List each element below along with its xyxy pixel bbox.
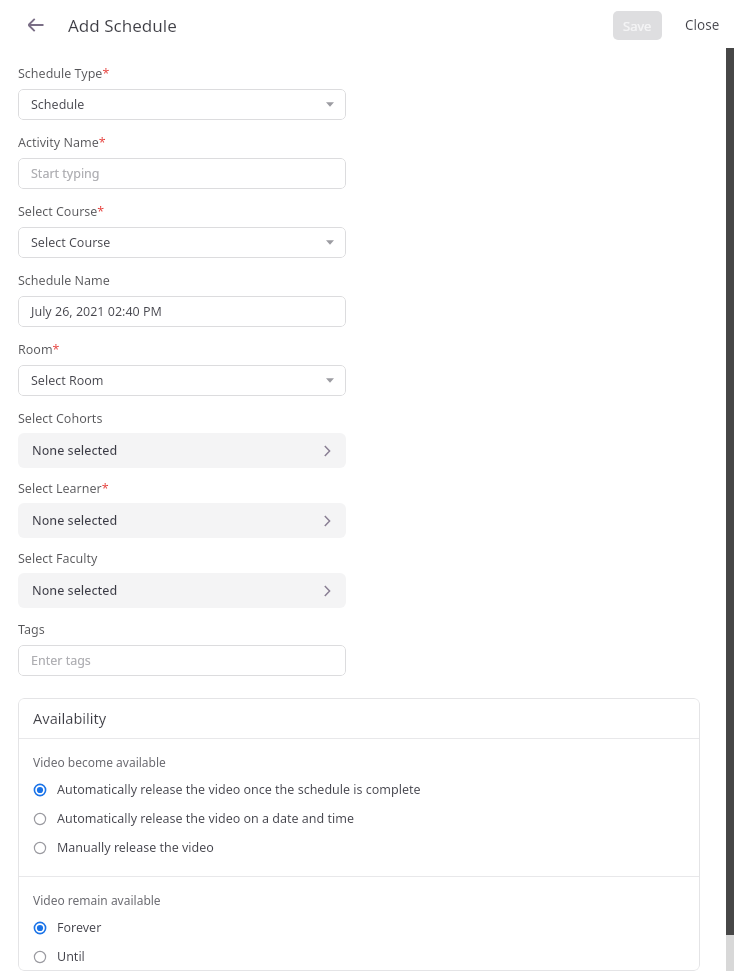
staticText: Activity Name*	[18, 134, 106, 151]
button[interactable]: Select Room	[18, 365, 346, 396]
staticText: July 26, 2021 02:40 PM	[31, 303, 337, 320]
staticText: Close	[685, 16, 720, 34]
button[interactable]: None selected	[18, 433, 346, 468]
button[interactable]: July 26, 2021 02:40 PM	[18, 296, 346, 327]
button[interactable]: Automatically release the video once the…	[33, 775, 685, 804]
button[interactable]: Manually release the video	[33, 833, 685, 862]
staticText: Video become available	[33, 754, 166, 770]
staticText: Room*	[18, 341, 60, 358]
button[interactable]: Start typing	[18, 158, 346, 189]
staticText: Start typing	[31, 165, 337, 182]
staticText: Select Course	[31, 234, 323, 251]
button[interactable]: Enter tags	[18, 645, 346, 676]
staticText: Select Learner*	[18, 480, 109, 497]
button[interactable]: Select Course	[18, 227, 346, 258]
staticText: Schedule Name	[18, 272, 110, 289]
staticText: None selected	[32, 442, 320, 459]
button[interactable]: None selected	[18, 573, 346, 608]
staticText: Video remain available	[33, 892, 161, 908]
button[interactable]: Back	[18, 7, 54, 43]
staticText: Availability	[33, 708, 107, 728]
staticText: Select Cohorts	[18, 410, 103, 427]
staticText: Enter tags	[31, 652, 337, 669]
staticText: Automatically release the video on a dat…	[57, 810, 354, 827]
button[interactable]: Schedule	[18, 89, 346, 120]
staticText: Select Faculty	[18, 550, 98, 567]
staticText: Automatically release the video once the…	[57, 781, 421, 798]
button[interactable]: Automatically release the video on a dat…	[33, 804, 685, 833]
staticText: Select Room	[31, 372, 323, 389]
staticText: Forever	[57, 919, 102, 936]
staticText: Tags	[18, 621, 45, 638]
staticText: Save	[623, 17, 652, 35]
staticText: Manually release the video	[57, 839, 214, 856]
button[interactable]: Until	[33, 942, 685, 971]
staticText: Schedule	[31, 96, 323, 113]
staticText: None selected	[32, 582, 320, 599]
button[interactable]: Save	[613, 11, 662, 40]
staticText: None selected	[32, 512, 320, 529]
staticText: Select Course*	[18, 203, 105, 220]
button[interactable]: Close	[683, 10, 722, 40]
staticText: Schedule Type*	[18, 65, 110, 82]
button[interactable]: Forever	[33, 913, 685, 942]
button[interactable]: None selected	[18, 503, 346, 538]
staticText: Add Schedule	[68, 14, 177, 37]
staticText: Until	[57, 948, 85, 965]
